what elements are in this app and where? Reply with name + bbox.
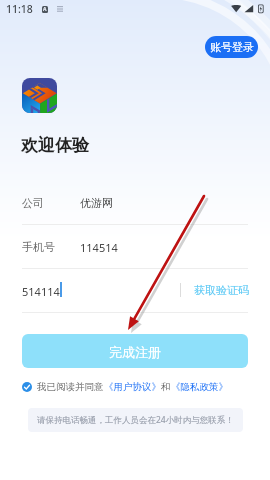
staticText: 手机号 xyxy=(22,240,55,254)
staticText: 《用户协议》 xyxy=(104,381,161,393)
staticText: 《隐私政策》 xyxy=(171,381,228,393)
staticText: 和 xyxy=(161,381,171,393)
staticText: 优游网 xyxy=(80,196,113,210)
button[interactable]: 我已阅读并同意 xyxy=(22,379,228,394)
staticText: 11:18 xyxy=(6,2,33,16)
staticText: 获取验证码 xyxy=(194,283,249,297)
staticText: 我已阅读并同意 xyxy=(37,381,104,393)
staticText: 公司 xyxy=(22,196,44,210)
button[interactable]: 账号登录 xyxy=(205,36,258,58)
staticText: A xyxy=(43,6,47,13)
staticText: 欢迎体验 xyxy=(21,135,89,156)
staticText: 完成注册 xyxy=(109,344,161,360)
staticText: 514114 xyxy=(22,284,60,299)
staticText: 请保持电话畅通，工作人员会在24小时内与您联系！ xyxy=(37,414,234,426)
button[interactable]: 完成注册 xyxy=(22,334,248,368)
button[interactable]: 获取验证码 xyxy=(190,278,252,302)
staticText: 账号登录 xyxy=(210,40,254,54)
staticText: 114514 xyxy=(80,240,118,255)
